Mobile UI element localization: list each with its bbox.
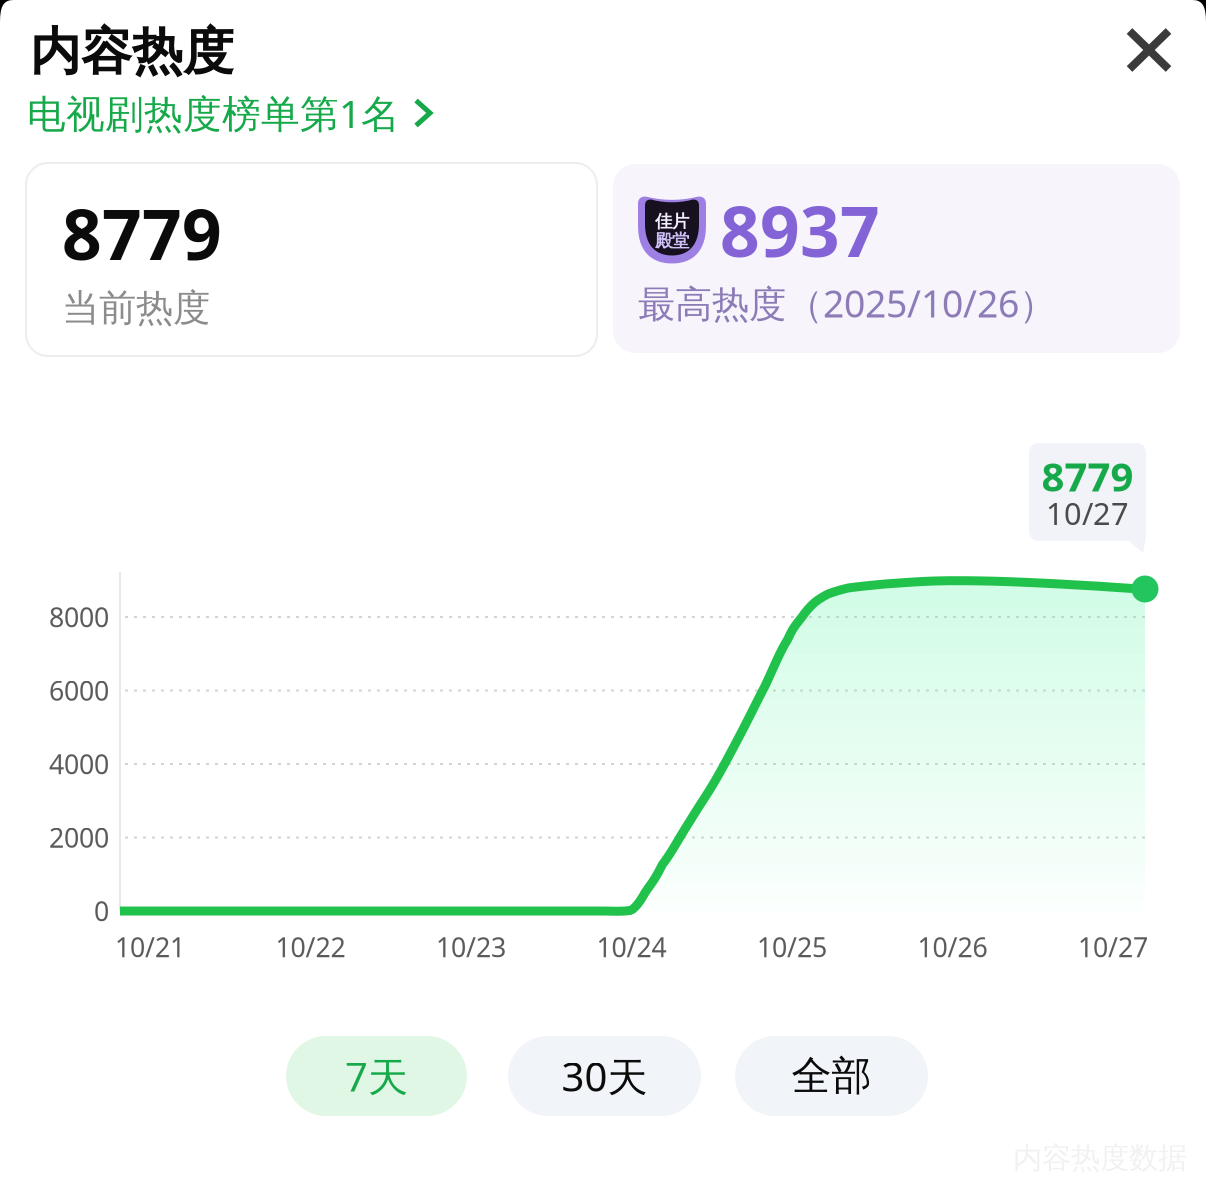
staticText: 10/25 [757, 929, 827, 965]
staticText: 8937 [720, 184, 880, 276]
staticText: 10/27 [1078, 929, 1148, 965]
staticText: 10/22 [275, 929, 345, 965]
staticText: 10/27 [1046, 493, 1129, 533]
staticText: 0 [94, 893, 109, 929]
staticText: 10/21 [115, 929, 185, 965]
staticText: 电视剧热度榜单第1名 [27, 87, 400, 139]
staticText: 全部 [791, 1051, 871, 1100]
staticText: 当前热度 [62, 285, 210, 331]
button[interactable]: 7天 [286, 1036, 467, 1116]
button[interactable]: 30天 [508, 1036, 701, 1116]
staticText: 8779 [1041, 449, 1133, 502]
staticText: 最高热度（2025/10/26） [638, 278, 1056, 328]
staticText: 10/26 [917, 929, 987, 965]
button[interactable]: Close [1105, 7, 1192, 93]
staticText: 2000 [49, 820, 109, 855]
staticText: 内容热度数据 [1013, 1140, 1187, 1176]
staticText: 内容热度 [30, 21, 234, 83]
staticText: 4000 [49, 746, 109, 782]
staticText: 30天 [561, 1049, 647, 1102]
button[interactable]: 电视剧热度榜单第1名 [27, 88, 497, 138]
button[interactable]: 全部 [735, 1036, 928, 1116]
staticText: 6000 [49, 673, 109, 708]
staticText: 殿堂 [655, 230, 689, 251]
staticText: 7天 [345, 1049, 408, 1102]
staticText: 佳片 [655, 211, 689, 232]
staticText: 8000 [49, 599, 109, 635]
staticText: 10/24 [596, 929, 666, 965]
staticText: 8779 [62, 187, 222, 279]
staticText: 10/23 [436, 929, 506, 965]
